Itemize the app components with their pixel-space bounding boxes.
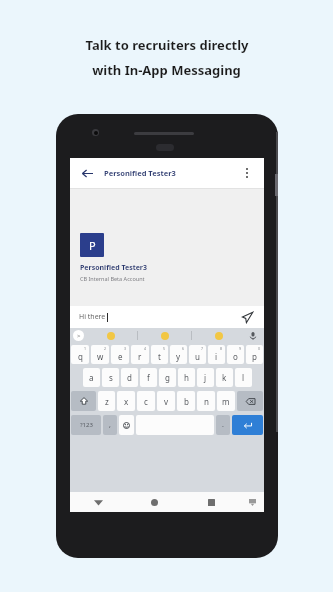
button[interactable]: x	[117, 391, 135, 411]
staticText: p	[252, 351, 257, 362]
staticText: t	[158, 351, 161, 362]
button[interactable]: 9	[227, 345, 244, 364]
button[interactable]: j	[197, 368, 214, 387]
button[interactable]: Home	[126, 492, 183, 512]
staticText: v	[164, 396, 169, 407]
button[interactable]: m	[217, 391, 235, 411]
button[interactable]: d	[121, 368, 138, 387]
staticText: 3	[124, 346, 127, 351]
staticText: .	[222, 420, 224, 430]
staticText: z	[105, 396, 109, 407]
staticText: b	[184, 396, 189, 407]
button[interactable]: n	[197, 391, 215, 411]
staticText: 6	[182, 346, 185, 351]
staticText: i	[215, 351, 218, 362]
button[interactable]: 8	[208, 345, 225, 364]
staticText: 9	[239, 346, 242, 351]
staticText: 1	[84, 346, 87, 351]
staticText: 2	[104, 346, 107, 351]
staticText: Personified Tester3	[80, 263, 147, 273]
staticText: l	[242, 372, 245, 383]
staticText: w	[97, 351, 104, 362]
staticText: d	[127, 372, 132, 383]
staticText: 5	[163, 346, 166, 351]
staticText: o	[233, 351, 238, 362]
staticText: Personified Tester3	[104, 168, 176, 178]
button[interactable]: h	[178, 368, 195, 387]
button[interactable]: 7	[189, 345, 206, 364]
button[interactable]: Backspace	[237, 391, 263, 411]
staticText: 8	[220, 346, 223, 351]
button[interactable]: .	[216, 415, 230, 435]
button[interactable]: Shift	[71, 391, 96, 411]
staticText: f	[147, 372, 150, 383]
staticText: y	[176, 351, 181, 362]
button[interactable]: g	[159, 368, 176, 387]
button[interactable]: 2	[91, 345, 109, 364]
staticText: n	[204, 396, 209, 407]
staticText: s	[109, 372, 113, 383]
button[interactable]: c	[137, 391, 155, 411]
staticText: j	[204, 372, 207, 383]
staticText: 0	[258, 346, 261, 351]
staticText: with In-App Messaging	[92, 61, 241, 79]
staticText: a	[89, 372, 94, 383]
staticText: q	[78, 351, 83, 362]
button[interactable]: Voice input	[245, 332, 261, 340]
staticText: CB Internal Beta Account	[80, 275, 145, 282]
button[interactable]: k	[216, 368, 233, 387]
button[interactable]: f	[140, 368, 157, 387]
button[interactable]: 4	[131, 345, 149, 364]
button[interactable]: Switch keyboard	[240, 492, 264, 512]
staticText: P	[89, 238, 96, 253]
button[interactable]: Emoji suggestion	[107, 332, 115, 340]
button[interactable]: 6	[170, 345, 187, 364]
staticText: Talk to recruiters directly	[85, 36, 249, 54]
button[interactable]: 5	[151, 345, 168, 364]
button[interactable]: Hide keyboard	[70, 492, 126, 512]
button[interactable]: More suggestions	[73, 330, 84, 341]
button[interactable]: Recents	[183, 492, 240, 512]
staticText: ,	[109, 420, 111, 430]
staticText: ?123	[80, 421, 93, 429]
button[interactable]: Enter	[232, 415, 263, 435]
button[interactable]: Emoji	[119, 415, 134, 435]
staticText: 4	[144, 346, 147, 351]
button[interactable]: a	[83, 368, 100, 387]
button[interactable]: More options	[238, 164, 256, 182]
staticText: c	[144, 396, 148, 407]
button[interactable]: v	[157, 391, 175, 411]
button[interactable]: Emoji suggestion	[161, 332, 169, 340]
button[interactable]: Back	[78, 164, 96, 182]
button[interactable]: 1	[71, 345, 89, 364]
staticText: 7	[201, 346, 204, 351]
staticText: h	[184, 372, 189, 383]
button[interactable]: l	[235, 368, 252, 387]
staticText: k	[222, 372, 227, 383]
button[interactable]: Send	[239, 309, 255, 325]
button[interactable]: ,	[103, 415, 117, 435]
staticText: g	[165, 372, 170, 383]
button[interactable]: b	[177, 391, 195, 411]
button[interactable]: 3	[111, 345, 129, 364]
button[interactable]: ?123	[71, 415, 101, 435]
staticText: r	[138, 351, 142, 362]
staticText: >	[77, 332, 81, 340]
button[interactable]: Emoji suggestion	[215, 332, 223, 340]
button[interactable]: s	[102, 368, 119, 387]
button[interactable]: 0	[246, 345, 263, 364]
button[interactable]: z	[98, 391, 115, 411]
staticText: e	[118, 351, 123, 362]
staticText: u	[195, 351, 200, 362]
staticText: m	[222, 396, 230, 407]
staticText: Hi there	[79, 312, 106, 322]
staticText: x	[124, 396, 129, 407]
